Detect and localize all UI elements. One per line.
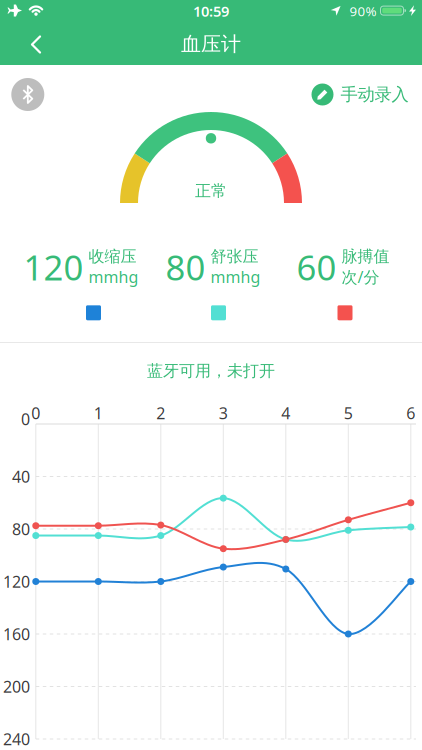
staticText: 血压计 <box>181 32 241 56</box>
staticText: 80 <box>165 244 205 290</box>
staticText: mmhg <box>88 266 138 287</box>
staticText: mmhg <box>210 266 260 287</box>
staticText: 0 <box>21 408 30 430</box>
staticText: 5 <box>344 402 353 424</box>
staticText: 脉搏值 <box>341 246 389 266</box>
button[interactable]: 返回 <box>0 24 60 65</box>
staticText: 120 <box>23 244 83 290</box>
staticText: 90% <box>349 2 376 20</box>
staticText: 收缩压 <box>88 246 136 266</box>
staticText: 120 <box>3 571 30 592</box>
staticText: 10:59 <box>193 1 229 21</box>
staticText: 240 <box>3 728 30 750</box>
staticText: 4 <box>281 402 290 424</box>
staticText: 2 <box>156 402 165 424</box>
button[interactable]: 蓝牙 <box>11 78 44 111</box>
staticText: 蓝牙可用，未打开 <box>147 361 275 381</box>
staticText: 正常 <box>195 181 227 201</box>
staticText: 手动录入 <box>340 84 408 105</box>
staticText: 3 <box>219 402 228 424</box>
staticText: 1 <box>94 402 103 424</box>
staticText: 次/分 <box>341 266 379 287</box>
staticText: 40 <box>12 466 30 487</box>
staticText: 80 <box>12 518 30 540</box>
button[interactable]: 手动录入 <box>311 83 408 105</box>
staticText: 舒张压 <box>210 246 258 266</box>
staticText: 200 <box>3 676 30 697</box>
staticText: 0 <box>31 402 40 424</box>
staticText: 6 <box>406 402 415 424</box>
staticText: 60 <box>296 244 336 290</box>
staticText: 160 <box>3 623 30 645</box>
